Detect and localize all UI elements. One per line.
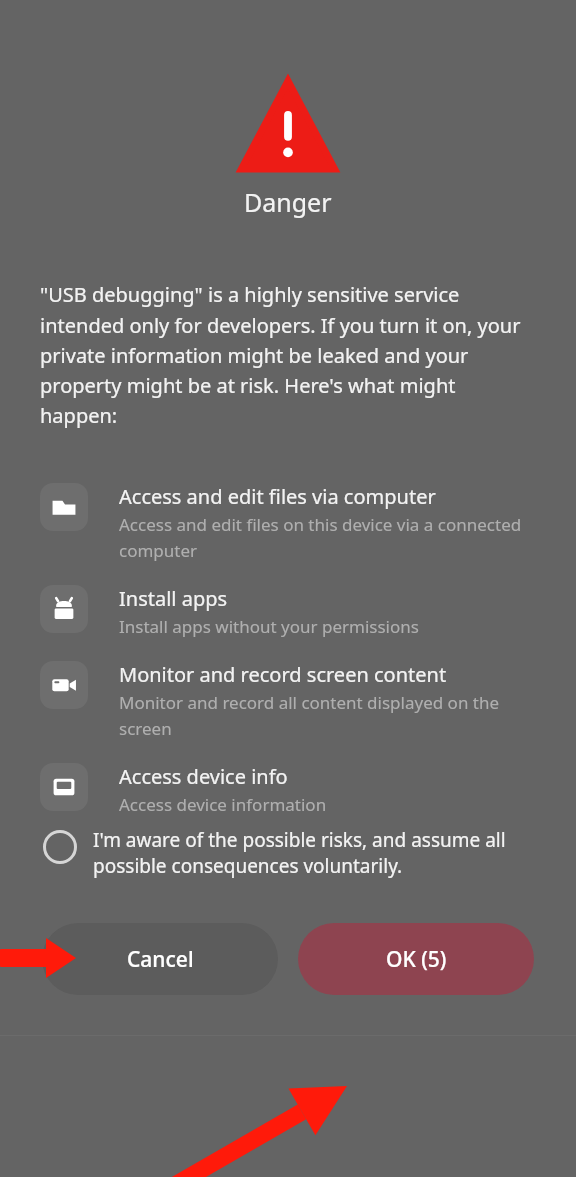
- button[interactable]: Monitor and record screen content: [0, 661, 576, 740]
- button[interactable]: OK (5): [298, 923, 534, 995]
- button[interactable]: Install apps: [0, 585, 576, 638]
- staticText: Access device info: [119, 763, 288, 790]
- staticText: Access and edit files on this device via…: [119, 513, 536, 562]
- staticText: Access device information: [119, 793, 327, 813]
- staticText: I'm aware of the possible risks, and ass…: [93, 827, 536, 879]
- staticText: OK (5): [386, 945, 447, 974]
- staticText: Monitor and record all content displayed…: [119, 691, 536, 740]
- staticText: Monitor and record screen content: [119, 661, 447, 688]
- button[interactable]: Access device info: [0, 763, 576, 813]
- button[interactable]: Access and edit files via computer: [0, 483, 576, 562]
- staticText: Install apps: [119, 585, 228, 612]
- staticText: Access and edit files via computer: [119, 483, 436, 510]
- button[interactable]: I'm aware of the risks checkbox: [0, 821, 576, 885]
- button[interactable]: Cancel: [42, 923, 278, 995]
- staticText: Cancel: [127, 945, 194, 974]
- other: I'm aware of the risks checkbox: [43, 830, 77, 864]
- staticText: Danger: [244, 185, 332, 219]
- staticText: "USB debugging" is a highly sensitive se…: [40, 281, 536, 428]
- staticText: Install apps without your permissions: [119, 615, 419, 638]
